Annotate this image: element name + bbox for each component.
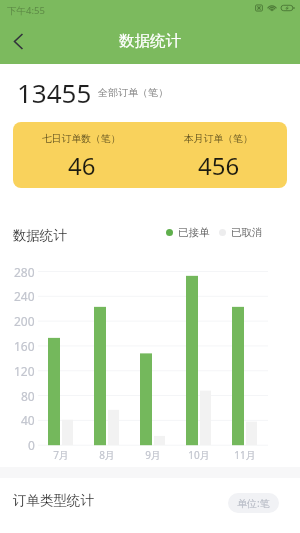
staticText: 0 (28, 437, 35, 453)
staticText: 订单类型统计 (13, 492, 94, 509)
button[interactable]: Back (0, 19, 36, 63)
button[interactable]: 已取消 (219, 226, 263, 239)
button[interactable]: 本月订单（笔） (150, 131, 287, 180)
button[interactable]: 已接单 (166, 226, 210, 239)
button[interactable]: 单位:笔 (228, 493, 279, 513)
staticText: 456 (198, 149, 240, 182)
staticText: 9月 (145, 448, 161, 462)
staticText: 全部订单（笔） (98, 86, 168, 99)
staticText: 120 (14, 363, 35, 379)
staticText: 240 (14, 288, 35, 304)
staticText: 10月 (188, 448, 210, 462)
button[interactable]: 七日订单数（笔） (13, 131, 150, 180)
staticText: 11月 (234, 448, 256, 462)
staticText: 单位:笔 (237, 496, 270, 510)
staticText: 7月 (53, 448, 69, 462)
staticText: 8月 (99, 448, 115, 462)
staticText: 下午4:55 (7, 4, 45, 17)
staticText: 七日订单数（笔） (42, 133, 121, 145)
staticText: 160 (14, 338, 35, 354)
staticText: 数据统计 (13, 227, 67, 244)
staticText: 13455 (17, 75, 92, 110)
staticText: 40 (21, 412, 35, 428)
staticText: 80 (21, 388, 35, 404)
staticText: 已取消 (231, 226, 263, 239)
staticText: 46 (68, 149, 96, 182)
staticText: 200 (14, 313, 35, 329)
staticText: 本月订单（笔） (184, 133, 253, 145)
staticText: 数据统计 (119, 31, 181, 51)
staticText: 已接单 (178, 226, 210, 239)
staticText: 280 (14, 264, 35, 280)
